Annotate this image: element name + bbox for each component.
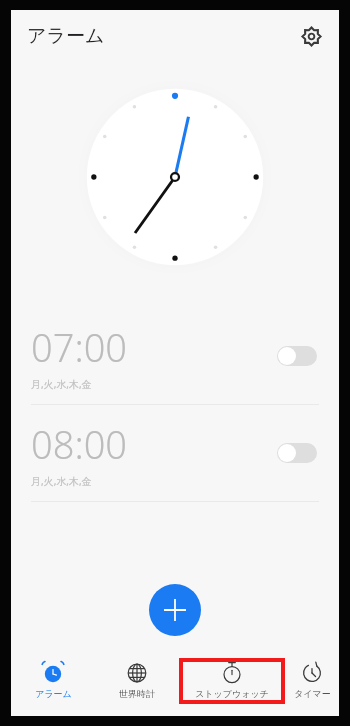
- button[interactable]: Toggle alarm: [275, 438, 319, 468]
- button[interactable]: タイマー: [285, 659, 339, 703]
- staticText: 08:00: [31, 418, 128, 470]
- staticText: 07:00: [31, 321, 128, 373]
- button[interactable]: Add alarm: [149, 584, 201, 636]
- staticText: アラーム: [35, 688, 72, 699]
- staticText: アラーム: [27, 24, 105, 48]
- button[interactable]: 08:00: [11, 405, 339, 501]
- button[interactable]: Toggle alarm: [275, 341, 319, 371]
- button[interactable]: ストップウォッチ: [190, 659, 274, 703]
- button[interactable]: 世界時計: [95, 659, 179, 703]
- button[interactable]: 07:00: [11, 308, 339, 404]
- staticText: タイマー: [294, 688, 331, 699]
- staticText: 月,火,水,木,金: [31, 474, 92, 488]
- staticText: 月,火,水,木,金: [31, 377, 92, 391]
- button[interactable]: アラーム: [11, 659, 95, 703]
- staticText: ストップウォッチ: [195, 688, 269, 699]
- button[interactable]: Settings: [294, 19, 328, 53]
- staticText: 世界時計: [119, 688, 155, 699]
